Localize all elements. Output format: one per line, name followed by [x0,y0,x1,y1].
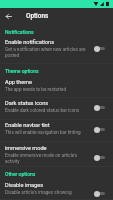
staticText: Enable navbar tint [5,122,50,129]
staticText: Theme options [5,68,39,74]
staticText: Get a notification when new articles are… [5,47,86,58]
staticText: Disable images [5,182,44,189]
button[interactable]: Enable navbar tint [0,120,113,142]
staticText: Disable article's images showing [5,190,72,195]
staticText: The app needs to be restarted [5,87,67,92]
staticText: Dark status icons [5,100,49,107]
staticText: Other options [5,171,36,177]
staticText: App theme [5,79,33,86]
button[interactable]: App theme [0,78,113,98]
staticText: Enable notifications [5,39,55,46]
button[interactable]: immersive mode [0,142,113,167]
staticText: Enable dark colored status bar icons [5,108,80,113]
staticText: Notifications [5,29,34,35]
staticText: immersive mode [5,145,47,152]
staticText: Options [26,12,49,20]
button[interactable]: Enable notifications [0,38,113,64]
button[interactable]: Disable images [0,180,113,200]
button[interactable]: Back [0,8,16,24]
staticText: Enable immersive mode on article's activ… [5,153,78,164]
staticText: This will enable navigation bar tinting [5,130,81,135]
button[interactable]: Dark status icons [0,98,113,120]
